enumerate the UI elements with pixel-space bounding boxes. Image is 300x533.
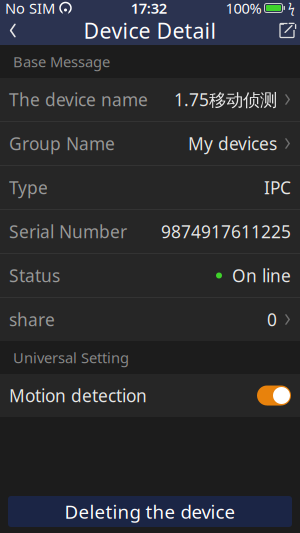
button[interactable]: share xyxy=(0,298,300,341)
staticText: Serial Number xyxy=(9,220,127,243)
button[interactable]: The device name xyxy=(0,78,300,121)
staticText: Group Name xyxy=(9,132,115,155)
button[interactable]: Motion detection xyxy=(257,385,291,405)
button[interactable]: Type xyxy=(0,166,300,209)
staticText: No SIM xyxy=(5,0,55,18)
staticText: IPC xyxy=(264,176,291,199)
staticText: 9874917611225 xyxy=(161,220,291,243)
staticText: 0 xyxy=(267,308,277,331)
button[interactable]: Deleting the device xyxy=(8,496,292,527)
staticText: share xyxy=(9,308,55,331)
staticText: 1.75移动侦测 xyxy=(174,88,277,111)
staticText: On line xyxy=(222,264,291,287)
staticText: Motion detection xyxy=(9,384,147,407)
staticText: Status xyxy=(9,264,60,287)
staticText: Device Detail xyxy=(83,16,216,45)
button[interactable]: Serial Number xyxy=(0,210,300,253)
staticText: Deleting the device xyxy=(64,499,235,524)
staticText: Universal Setting xyxy=(13,348,129,367)
staticText: Base Message xyxy=(13,52,110,71)
staticText: Type xyxy=(9,176,48,199)
button[interactable]: Share xyxy=(256,16,300,45)
staticText: 17:32 xyxy=(131,0,167,18)
staticText: My devices xyxy=(188,132,277,155)
staticText: 100% xyxy=(225,0,261,18)
button[interactable]: Group Name xyxy=(0,122,300,165)
button[interactable]: Back xyxy=(0,16,44,45)
staticText: The device name xyxy=(9,88,148,111)
staticText: ϟ xyxy=(285,0,295,16)
